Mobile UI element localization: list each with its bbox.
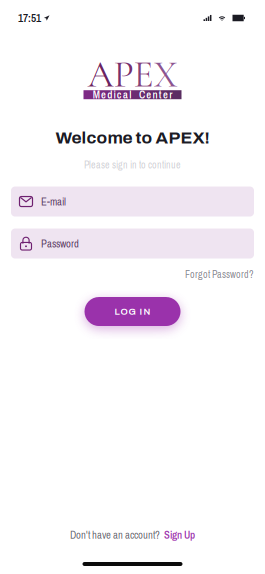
staticText: 17:51 [18,10,41,26]
staticText: P [113,52,133,97]
staticText: Forgot Password? [185,267,254,281]
staticText: Sign Up [164,528,195,542]
button[interactable]: E-mail [11,186,254,216]
staticText: Welcome to APEX! [55,128,209,147]
staticText: A [87,52,113,97]
staticText: E [133,52,153,97]
button[interactable]: Forgot Password? [185,267,254,281]
staticText: LOG IN [114,306,150,317]
staticText: X [153,52,177,97]
staticText: Medical Center [93,87,172,102]
button[interactable]: Sign Up [164,528,195,542]
staticText: Please sign in to continue [84,158,181,172]
staticText: Password [41,236,79,251]
button[interactable]: Password [11,228,254,258]
button[interactable]: LOG IN [84,297,180,326]
staticText: Don't have an account? [70,528,160,542]
staticText: E-mail [41,194,66,209]
